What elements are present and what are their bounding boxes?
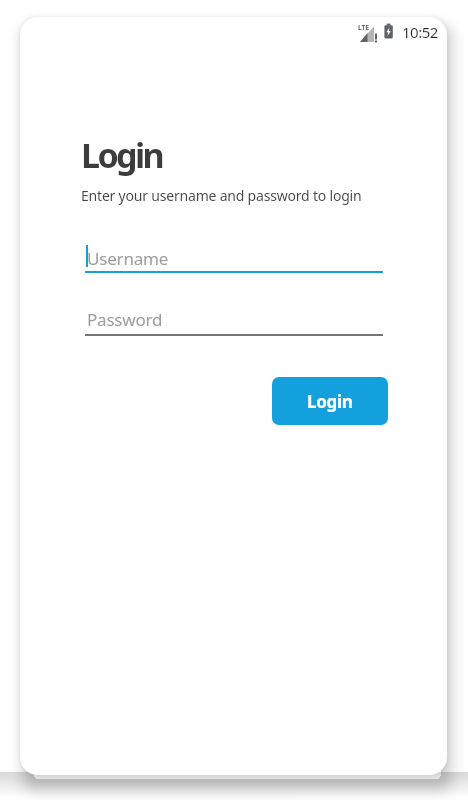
button[interactable]: Username (85, 243, 383, 275)
staticText: Username (87, 247, 169, 270)
staticText: Login (307, 390, 353, 413)
staticText: Password (87, 308, 163, 331)
staticText: Login (81, 132, 163, 178)
staticText: Enter your username and password to logi… (81, 186, 362, 205)
staticText: LTE (358, 23, 369, 32)
staticText: 10:52 (402, 22, 438, 42)
button[interactable]: Password (85, 305, 383, 337)
button[interactable]: Login (272, 377, 388, 425)
